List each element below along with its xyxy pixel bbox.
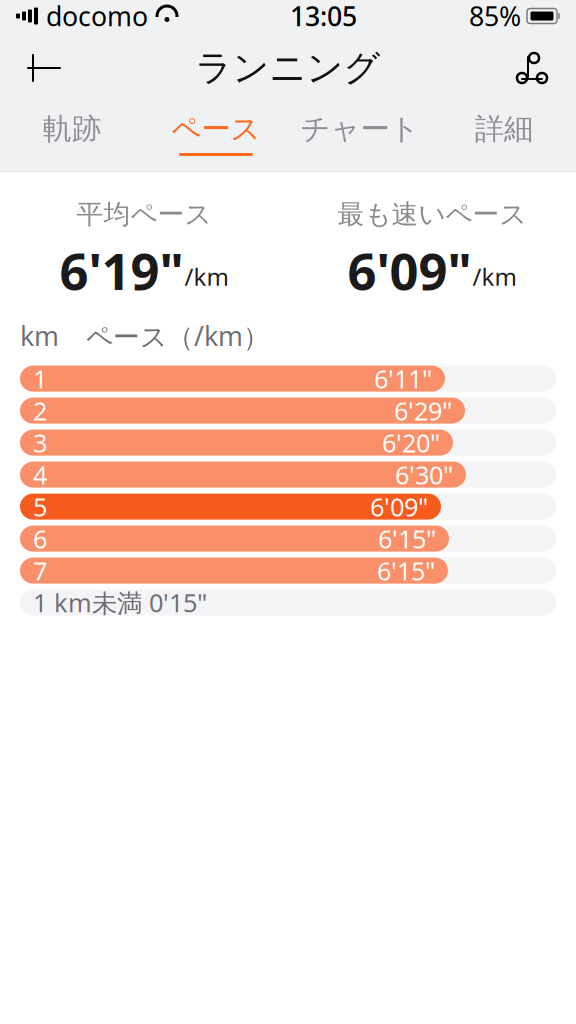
staticText: 4 xyxy=(33,458,47,491)
button[interactable]: Share route xyxy=(500,36,564,100)
staticText: 7 xyxy=(33,554,47,587)
staticText: 6'29" xyxy=(394,394,452,427)
staticText: 13:05 xyxy=(290,0,357,34)
staticText: 最も速いペース xyxy=(337,198,526,231)
staticText: 85% xyxy=(469,0,521,34)
button[interactable]: ペース xyxy=(144,104,288,172)
button[interactable]: 軌跡 xyxy=(0,104,144,172)
staticText: 1 xyxy=(33,362,47,395)
staticText: 6 xyxy=(33,522,47,555)
button[interactable]: チャート xyxy=(288,104,432,172)
staticText: 2 xyxy=(33,394,47,427)
staticText: 6'15" xyxy=(377,554,435,587)
staticText: 6'11" xyxy=(374,362,432,395)
staticText: 平均ペース xyxy=(76,198,211,231)
button[interactable]: 詳細 xyxy=(432,104,576,172)
staticText: 5 xyxy=(33,490,47,523)
staticText: 6'15" xyxy=(378,522,436,555)
staticText: 6'09" xyxy=(347,237,471,304)
staticText: 3 xyxy=(33,426,47,459)
staticText: 6'20" xyxy=(382,426,440,459)
staticText: km ペース（/km） xyxy=(20,318,270,354)
staticText: 1 km未満 0'15" xyxy=(33,586,207,619)
button[interactable]: Back xyxy=(12,36,76,100)
staticText: チャート xyxy=(300,111,419,147)
staticText: /km xyxy=(472,260,516,292)
staticText: /km xyxy=(184,260,228,292)
staticText: 6'09" xyxy=(370,490,428,523)
staticText: 軌跡 xyxy=(43,111,101,147)
staticText: 6'19" xyxy=(59,237,183,304)
staticText: ペース xyxy=(171,111,260,147)
staticText: 6'30" xyxy=(395,458,453,491)
staticText: docomo xyxy=(46,0,148,34)
staticText: 詳細 xyxy=(475,111,533,147)
staticText: ランニング xyxy=(195,46,380,90)
